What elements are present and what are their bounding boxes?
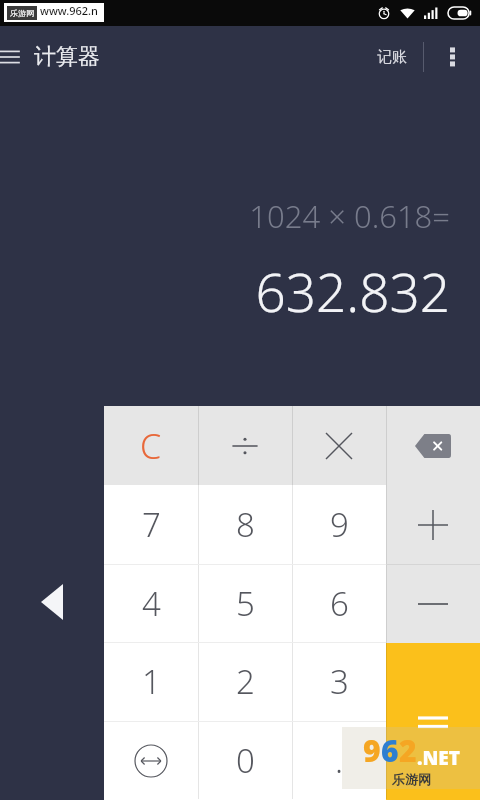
button[interactable]: Decimal point bbox=[292, 721, 386, 800]
button[interactable]: More options bbox=[430, 35, 474, 79]
button[interactable]: Backspace bbox=[386, 406, 480, 485]
button[interactable]: 7 bbox=[104, 485, 198, 564]
staticText: 3 bbox=[330, 659, 349, 704]
button[interactable]: 3 bbox=[292, 642, 386, 721]
button[interactable]: 1 bbox=[104, 642, 198, 721]
staticText: 乐游网 bbox=[392, 771, 431, 787]
staticText: 0 bbox=[236, 738, 255, 783]
staticText: 8 bbox=[236, 502, 255, 547]
staticText: . bbox=[335, 738, 344, 783]
staticText: .NET bbox=[417, 745, 460, 771]
staticText: 9 bbox=[363, 730, 381, 771]
staticText: C bbox=[140, 423, 162, 469]
staticText: 7 bbox=[142, 502, 161, 547]
button[interactable]: Divide bbox=[198, 406, 292, 485]
staticText: 乐游网 bbox=[10, 8, 34, 18]
button[interactable]: 8 bbox=[198, 485, 292, 564]
staticText: 记账 bbox=[377, 48, 407, 67]
staticText: 6 bbox=[381, 730, 399, 771]
staticText: 1 bbox=[142, 659, 161, 704]
staticText: 4 bbox=[142, 581, 161, 626]
staticText: 2 bbox=[236, 659, 255, 704]
button[interactable]: 0 bbox=[198, 721, 292, 800]
staticText: 632.832 bbox=[255, 255, 450, 327]
button[interactable]: Plus bbox=[386, 485, 480, 564]
button[interactable]: Menu bbox=[0, 40, 26, 74]
button[interactable]: Multiply bbox=[292, 406, 386, 485]
staticText: 计算器 bbox=[34, 43, 100, 71]
button[interactable]: Clear bbox=[104, 406, 198, 485]
button[interactable]: 记账 bbox=[367, 40, 417, 75]
button[interactable]: Equals bbox=[386, 643, 480, 800]
button[interactable]: 4 bbox=[104, 564, 198, 643]
staticText: 2 bbox=[399, 730, 417, 771]
button[interactable]: 6 bbox=[292, 564, 386, 643]
button[interactable]: 2 bbox=[198, 642, 292, 721]
button[interactable]: 5 bbox=[198, 564, 292, 643]
staticText: www.962.net bbox=[40, 3, 104, 22]
staticText: 5 bbox=[236, 581, 255, 626]
button[interactable]: Back bbox=[30, 580, 74, 624]
staticText: 6 bbox=[330, 581, 349, 626]
button[interactable]: 9 bbox=[292, 485, 386, 564]
staticText: 1024 × 0.618= bbox=[249, 195, 450, 237]
staticText: 9 bbox=[330, 502, 349, 547]
button[interactable]: Toggle bbox=[104, 721, 198, 800]
button[interactable]: Minus bbox=[386, 564, 480, 643]
